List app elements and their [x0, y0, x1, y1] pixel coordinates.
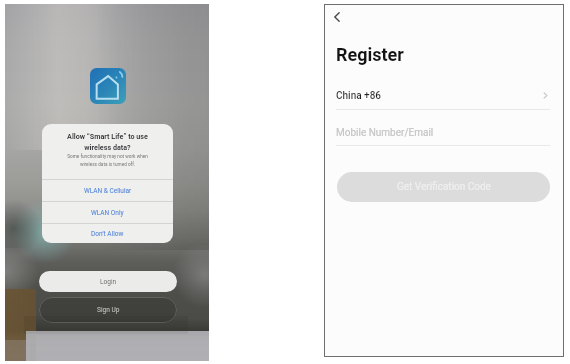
staticText: Don’t Allow [91, 230, 124, 238]
button[interactable]: WLAN Only [42, 202, 173, 223]
button[interactable]: Sign Up [39, 297, 177, 323]
button[interactable]: WLAN & Cellular [42, 180, 173, 201]
staticText: Register [336, 44, 404, 65]
button[interactable]: China +86 [336, 85, 550, 106]
button[interactable]: Back [328, 8, 346, 26]
staticText: Login [100, 278, 117, 286]
button[interactable]: Login [39, 271, 177, 292]
staticText: Mobile Number/Email [336, 127, 434, 139]
button[interactable]: Get Verification Code [337, 172, 550, 202]
button[interactable]: Don’t Allow [42, 224, 173, 243]
staticText: Sign Up [97, 306, 120, 314]
staticText: Get Verification Code [397, 181, 491, 193]
staticText: Some functionality may not work when wir… [67, 154, 148, 167]
staticText: Allow “Smart Life” to use wireless data? [67, 132, 148, 152]
staticText: WLAN & Cellular [84, 187, 132, 195]
staticText: China +86 [336, 90, 382, 102]
staticText: WLAN Only [91, 209, 124, 217]
